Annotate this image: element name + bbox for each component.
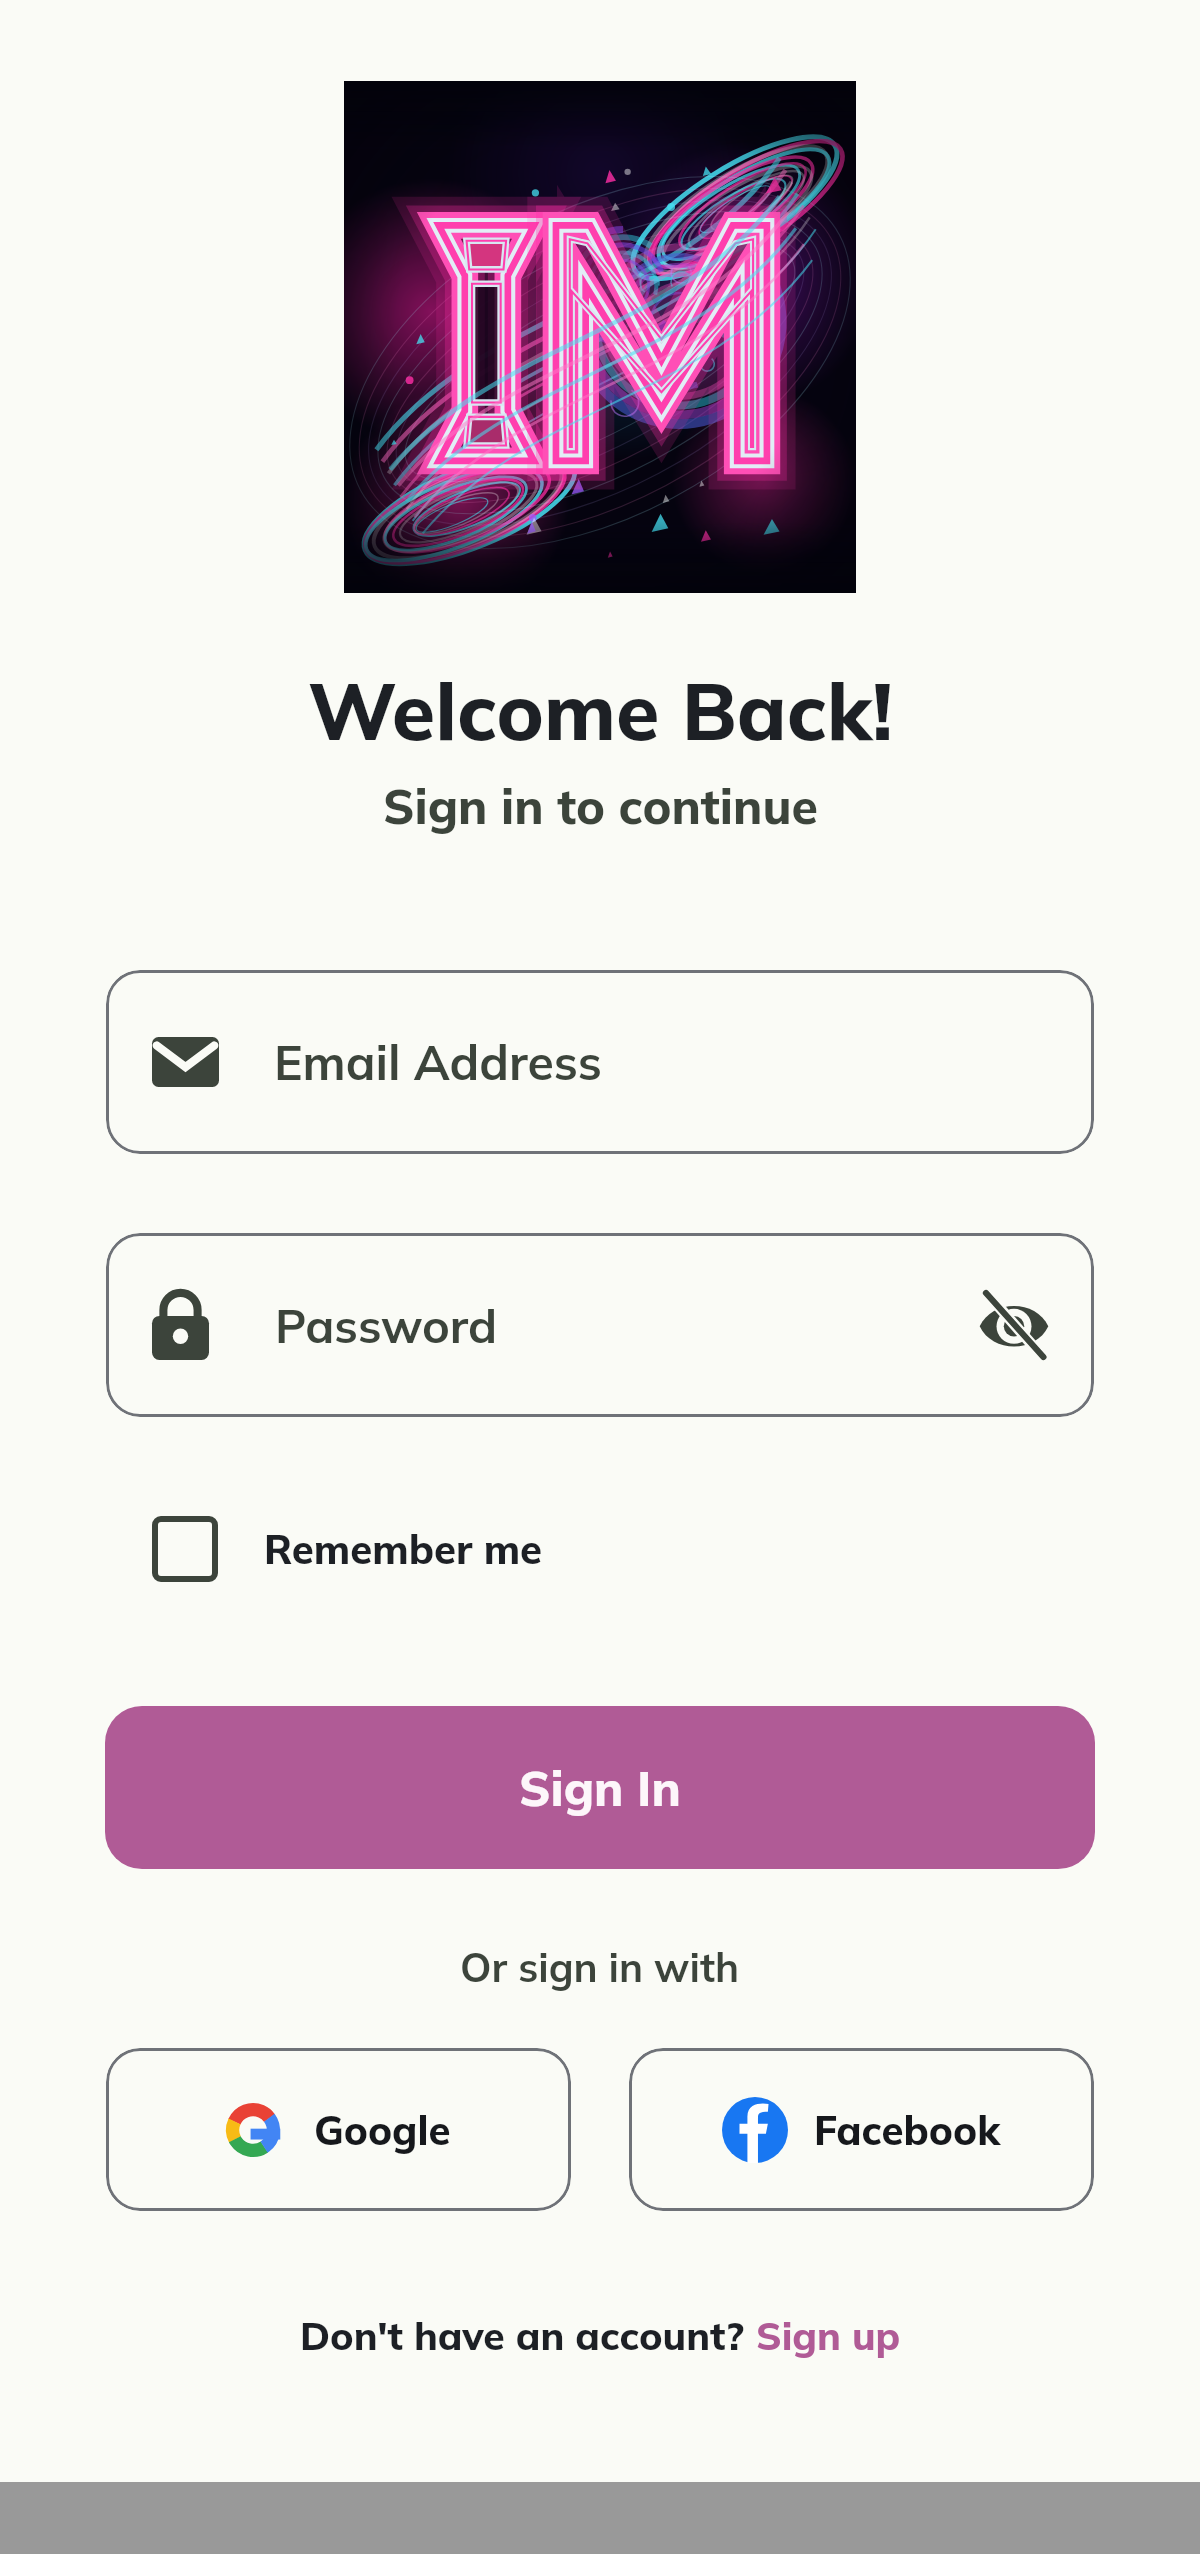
button[interactable]: Email Address xyxy=(106,970,1094,1154)
button[interactable]: Facebook xyxy=(629,2048,1094,2211)
staticText: Facebook xyxy=(814,2105,1001,2155)
staticText: Or sign in with xyxy=(460,1942,740,1992)
staticText: Google xyxy=(314,2105,451,2155)
staticText: Email Address xyxy=(274,1032,602,1092)
button[interactable]: Sign In xyxy=(105,1706,1095,1869)
staticText: Remember me xyxy=(264,1524,543,1574)
staticText: Sign up xyxy=(756,2311,901,2360)
button[interactable]: Remember me xyxy=(152,1516,543,1582)
staticText: Sign in to continue xyxy=(383,776,818,836)
button[interactable]: Show password xyxy=(978,1289,1050,1361)
staticText: Don't have an account? xyxy=(300,2311,756,2360)
button[interactable]: Google xyxy=(106,2048,571,2211)
staticText: Sign In xyxy=(519,1758,681,1818)
button[interactable]: Password xyxy=(106,1233,1094,1417)
staticText: Password xyxy=(275,1296,498,1355)
button[interactable]: Sign up xyxy=(756,2311,901,2360)
staticText: Welcome Back! xyxy=(308,661,893,760)
